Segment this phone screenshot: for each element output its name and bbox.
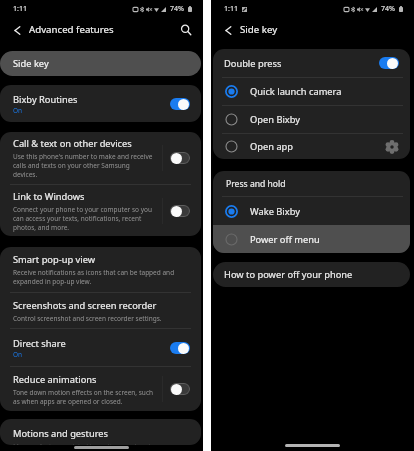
button[interactable]: Direct share xyxy=(0,329,201,366)
button[interactable]: Link to Windows xyxy=(0,185,201,236)
button[interactable]: Navigate up xyxy=(5,18,29,42)
staticText: Advanced features xyxy=(29,23,114,36)
staticText: Screenshots and screen recorder xyxy=(13,299,157,312)
button[interactable]: Off xyxy=(170,152,190,164)
staticText: Wake Bixby xyxy=(250,205,300,218)
button[interactable]: Wake Bixby xyxy=(213,197,410,225)
button[interactable]: How to power off your phone xyxy=(213,262,410,287)
staticText: 1:11 xyxy=(224,4,238,14)
staticText: Open Bixby xyxy=(250,113,301,126)
staticText: Power off menu xyxy=(250,233,320,246)
button[interactable]: Screenshots and screen recorder xyxy=(0,293,201,328)
staticText: On xyxy=(13,350,23,359)
button[interactable]: Navigate up xyxy=(216,18,240,42)
button[interactable]: Off xyxy=(170,205,190,217)
staticText: Link to Windows xyxy=(13,190,85,203)
staticText: Control screenshot and screen recorder s… xyxy=(13,314,162,323)
staticText: Quick launch camera xyxy=(250,85,342,98)
button[interactable]: Motions and gestures xyxy=(0,419,201,445)
button[interactable]: Power off menu xyxy=(213,225,410,253)
button[interactable]: Search xyxy=(175,19,197,41)
button[interactable]: Open Bixby xyxy=(213,106,410,133)
staticText: Smart pop-up view xyxy=(13,253,96,266)
button[interactable]: Off xyxy=(170,383,190,395)
button[interactable]: Open app settings xyxy=(383,138,401,156)
staticText: Tone down motion effects on the screen, … xyxy=(13,388,154,406)
staticText: On xyxy=(13,106,23,115)
button[interactable]: Reduce animations xyxy=(0,367,201,411)
button[interactable]: Bixby Routines xyxy=(0,85,201,122)
staticText: Press and hold xyxy=(226,178,286,190)
button[interactable]: Double press xyxy=(213,49,410,77)
staticText: Reduce animations xyxy=(13,373,97,386)
staticText: Manage features related to motions and g… xyxy=(13,442,167,445)
staticText: Direct share xyxy=(13,337,66,350)
staticText: Receive notifications as icons that can … xyxy=(13,268,190,286)
button[interactable]: Quick launch camera xyxy=(213,78,410,105)
staticText: 1:11 xyxy=(13,4,27,14)
staticText: Bixby Routines xyxy=(13,93,78,106)
staticText: 74% xyxy=(381,4,395,14)
staticText: Motions and gestures xyxy=(13,427,109,440)
button[interactable]: On xyxy=(379,57,399,69)
staticText: Double press xyxy=(224,57,379,70)
button[interactable]: Call & text on other devices xyxy=(0,132,201,184)
staticText: Connect your phone to your computer so y… xyxy=(13,205,154,232)
button[interactable]: On xyxy=(170,342,190,354)
staticText: 74% xyxy=(170,4,184,14)
staticText: Side key xyxy=(13,57,49,70)
staticText: How to power off your phone xyxy=(224,268,353,281)
staticText: Open app xyxy=(250,140,383,153)
staticText: Side key xyxy=(240,23,278,36)
staticText: Use this phone's number to make and rece… xyxy=(13,152,154,179)
button[interactable]: Smart pop-up view xyxy=(0,247,201,292)
button[interactable]: Side key xyxy=(0,51,201,76)
staticText: Call & text on other devices xyxy=(13,137,132,150)
button[interactable]: On xyxy=(170,98,190,110)
